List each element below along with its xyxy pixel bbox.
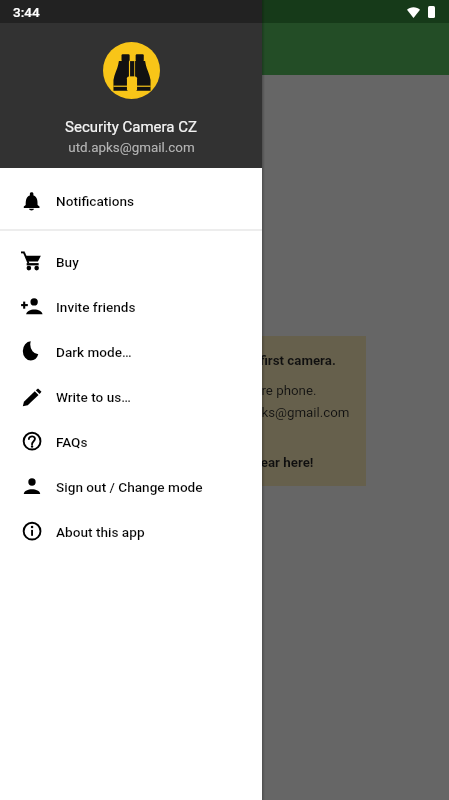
staticText: The camera will appear here! — [141, 455, 314, 471]
button[interactable]: Dark mode… — [0, 329, 262, 374]
button[interactable]: Notifications — [0, 178, 262, 223]
staticText: Sign out / Change mode — [56, 479, 203, 495]
button[interactable]: Sign out / Change mode — [0, 464, 262, 509]
staticText: Buy — [56, 254, 79, 270]
button[interactable]: About this app — [0, 509, 262, 554]
staticText: 1. Install this app on more phone. — [120, 383, 317, 399]
staticText: About this app — [56, 524, 145, 540]
staticText: Notifications — [56, 193, 135, 209]
staticText: Dark mode… — [56, 344, 132, 360]
staticText: Security Camera CZ — [65, 118, 197, 136]
staticText: utd.apks@gmail.com — [68, 140, 195, 156]
button[interactable]: Write to us… — [0, 374, 262, 419]
staticText: FAQs — [56, 434, 88, 450]
staticText: Invite friends — [56, 299, 136, 315]
button[interactable]: Buy — [0, 239, 262, 284]
staticText: Let's add your first camera. — [174, 353, 336, 369]
button[interactable]: FAQs — [0, 419, 262, 464]
staticText: 2. Log in as utd.apks@gmail.com — [153, 405, 350, 421]
staticText: 3:44 — [13, 4, 40, 20]
staticText: Write to us… — [56, 389, 131, 405]
button[interactable]: Invite friends — [0, 284, 262, 329]
